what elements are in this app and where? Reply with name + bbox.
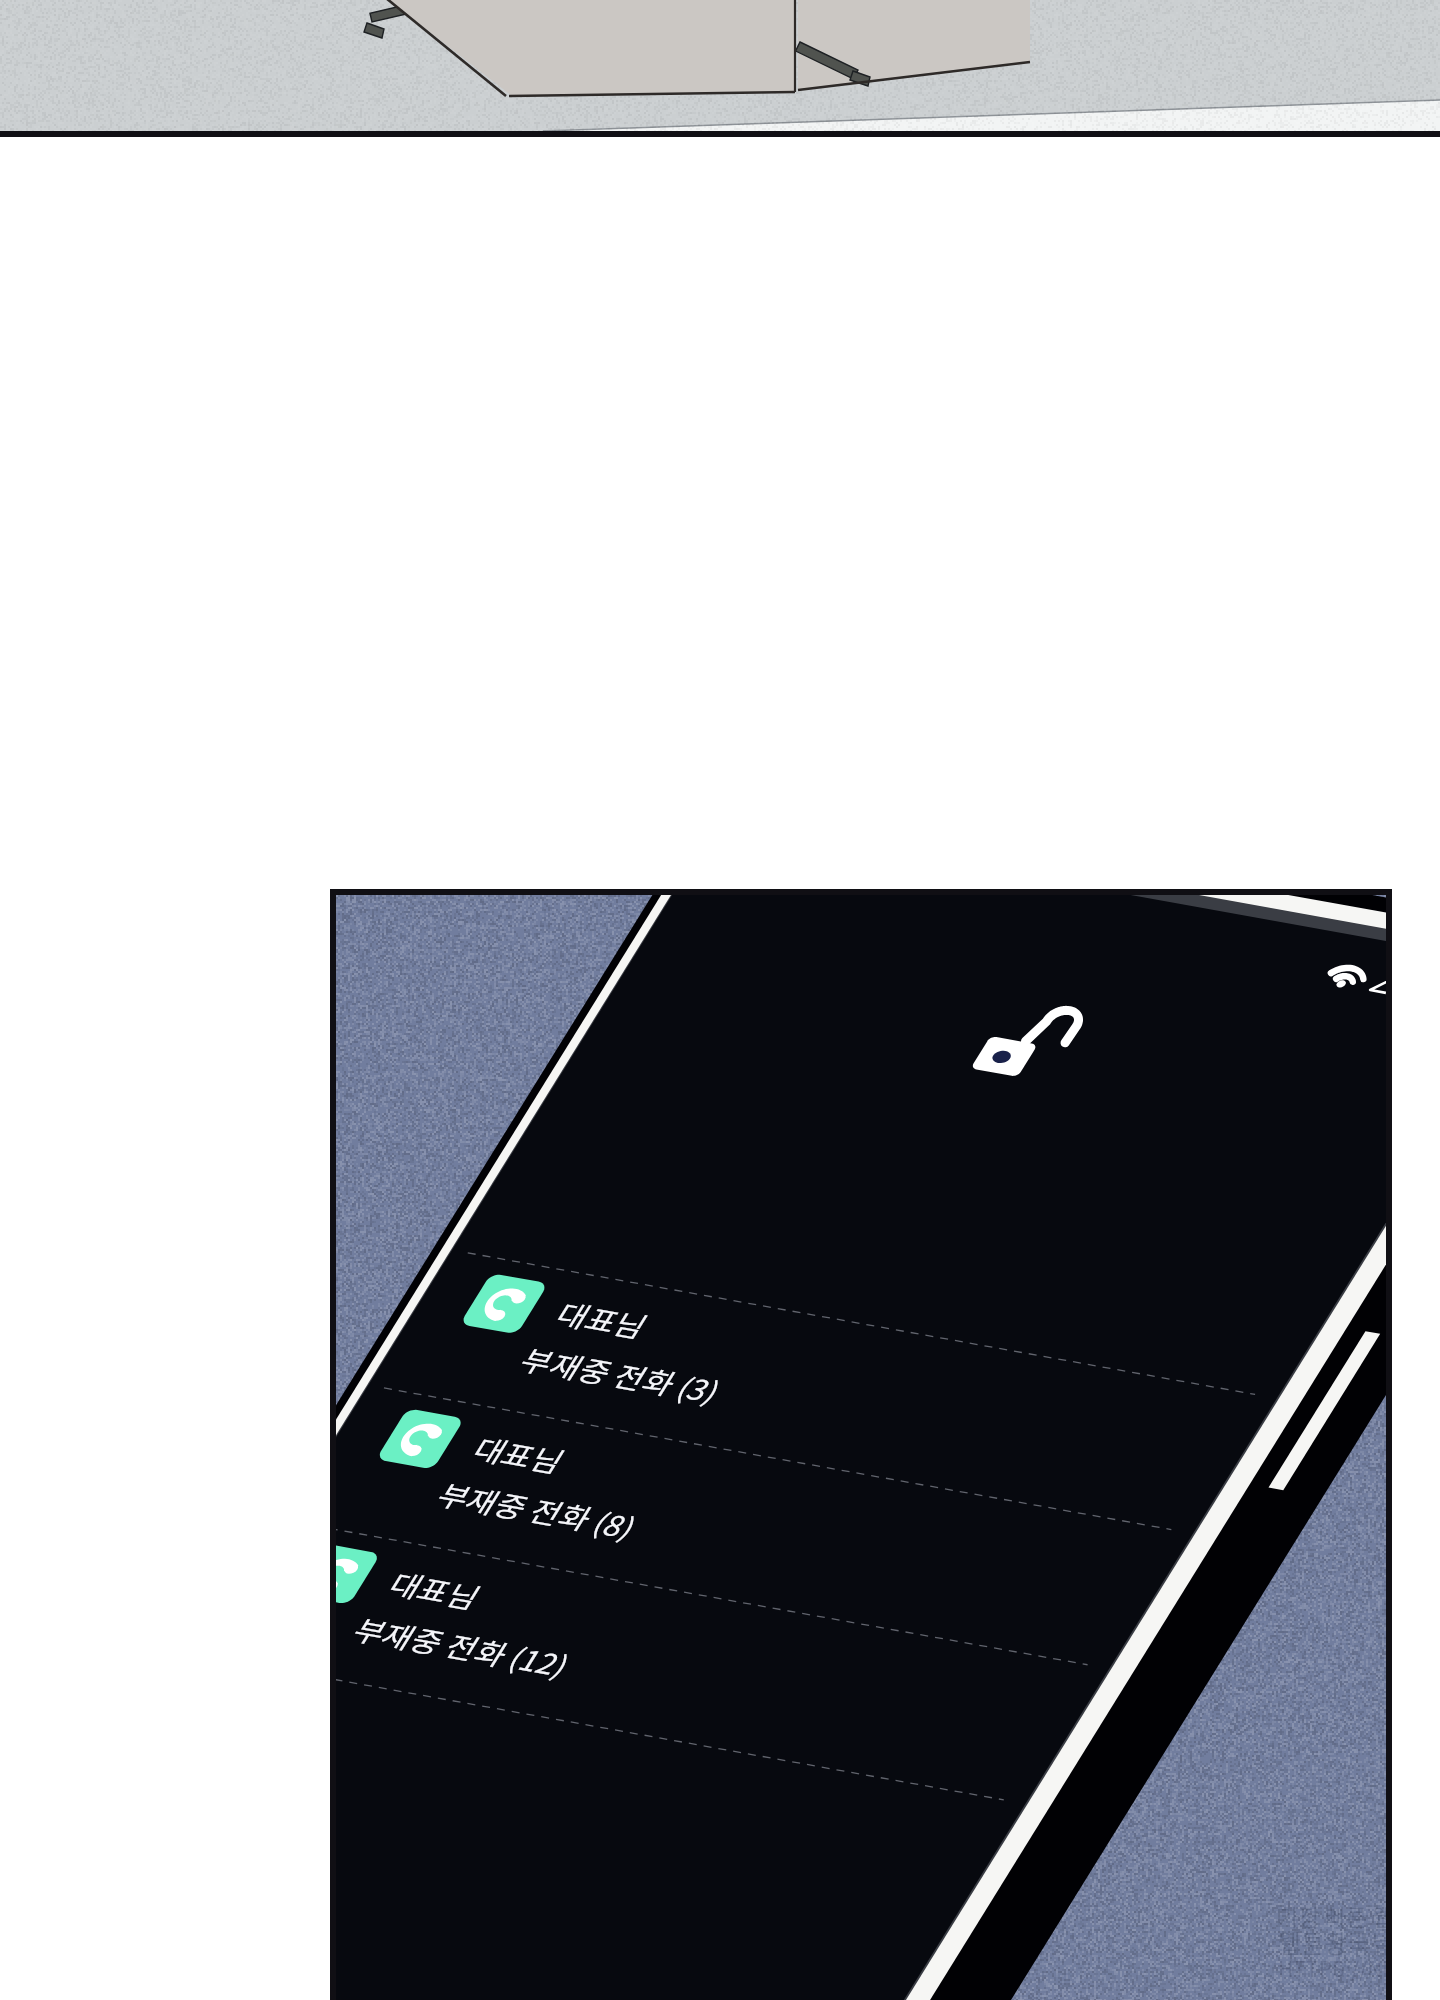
button[interactable]: Comic panel: phone lock screen with miss… xyxy=(0,0,1440,2000)
